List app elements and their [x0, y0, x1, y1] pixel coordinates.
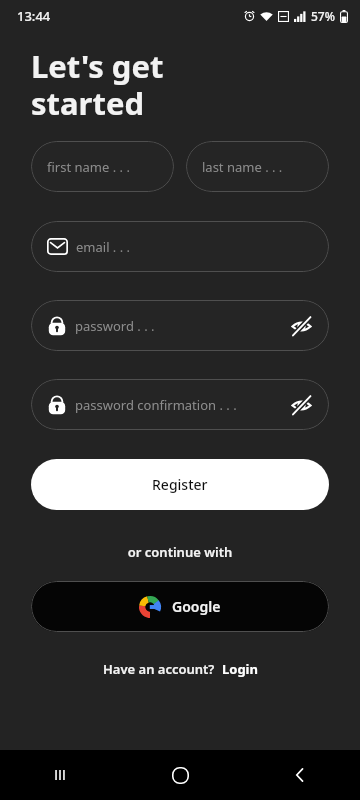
- staticText: 57%: [311, 8, 335, 24]
- staticText: 13:44: [17, 7, 51, 25]
- staticText: Google: [172, 597, 221, 616]
- button[interactable]: Toggle password visibility: [287, 312, 315, 340]
- staticText: Let's get started: [31, 45, 164, 124]
- button[interactable]: Back: [240, 750, 360, 800]
- button[interactable]: Google: [31, 581, 329, 632]
- staticText: last name . . .: [202, 158, 283, 176]
- staticText: Have an account?: [103, 660, 215, 678]
- staticText: Login: [222, 660, 258, 678]
- staticText: or continue with: [0, 543, 360, 561]
- button[interactable]: email . . .: [31, 221, 329, 272]
- button[interactable]: Register: [31, 459, 329, 510]
- staticText: Register: [152, 475, 208, 494]
- staticText: email . . .: [76, 238, 131, 256]
- button[interactable]: last name . . .: [186, 141, 329, 192]
- staticText: first name . . .: [47, 158, 130, 176]
- button[interactable]: Toggle password visibility: [287, 391, 315, 419]
- staticText: password confirmation . . .: [75, 396, 237, 414]
- button[interactable]: Home: [120, 750, 240, 800]
- button[interactable]: Login: [222, 660, 258, 678]
- staticText: password . . .: [75, 317, 155, 335]
- button[interactable]: password confirmation . . .: [31, 379, 329, 430]
- button[interactable]: Recent apps: [0, 750, 120, 800]
- button[interactable]: password . . .: [31, 300, 329, 351]
- button[interactable]: first name . . .: [31, 141, 174, 192]
